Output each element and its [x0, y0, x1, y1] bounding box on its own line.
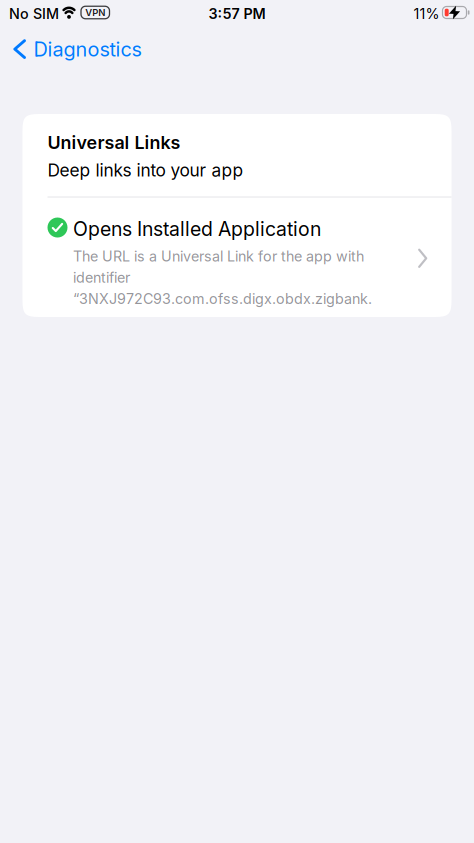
button[interactable]: Opens Installed Application: [22, 197, 428, 307]
staticText: VPN: [85, 7, 105, 18]
staticText: Diagnostics: [33, 37, 141, 61]
staticText: 3:57 PM: [208, 5, 265, 22]
staticText: Universal Links: [47, 132, 180, 153]
staticText: Opens Installed Application: [73, 217, 321, 240]
staticText: No SIM: [9, 5, 59, 22]
staticText: Deep links into your app: [47, 160, 243, 180]
staticText: 11%: [413, 5, 439, 22]
staticText: The URL is a Universal Link for the app …: [73, 248, 372, 307]
button[interactable]: Back to Diagnostics: [0, 36, 141, 60]
